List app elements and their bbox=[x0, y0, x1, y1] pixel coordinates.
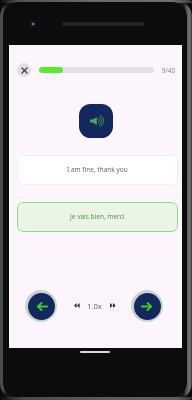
button[interactable]: Next bbox=[131, 290, 163, 322]
button[interactable]: Previous bbox=[25, 290, 57, 322]
button[interactable]: Play audio bbox=[79, 104, 113, 138]
button[interactable]: Je vais bien, merci bbox=[17, 202, 178, 232]
staticText: 1.0x bbox=[87, 301, 102, 311]
staticText: I am fine, thank you bbox=[67, 165, 128, 174]
button[interactable]: I am fine, thank you bbox=[17, 155, 178, 185]
button[interactable]: Slower bbox=[74, 303, 80, 308]
button[interactable]: Close bbox=[17, 63, 31, 77]
button[interactable]: Faster bbox=[110, 303, 116, 308]
staticText: Je vais bien, merci bbox=[70, 212, 125, 221]
staticText: 9/40 bbox=[162, 66, 175, 74]
